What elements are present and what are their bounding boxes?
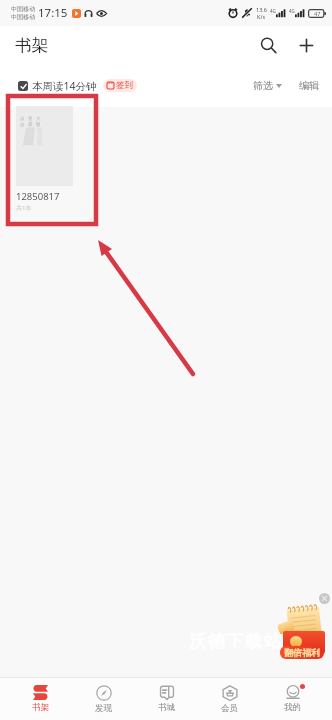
button[interactable]: 书架 — [8, 678, 72, 720]
button[interactable]: 编辑 — [299, 79, 319, 92]
staticText: 沃德下载站 — [188, 631, 282, 652]
staticText: K/s — [257, 13, 266, 20]
button[interactable]: Add book — [291, 30, 321, 60]
staticText: 查 — [28, 116, 33, 122]
staticText: 中国移动 — [11, 5, 35, 13]
button[interactable]: 本周读14分钟 — [18, 79, 97, 93]
staticText: 12850817 — [16, 190, 60, 203]
button[interactable]: 签到 — [103, 79, 137, 92]
staticText: 4G — [270, 8, 276, 14]
button[interactable]: Close promotion — [319, 593, 330, 604]
staticText: 点 — [20, 116, 25, 122]
staticText: 4G — [289, 8, 295, 14]
staticText: 我的 — [284, 702, 301, 713]
staticText: 击 — [20, 122, 25, 128]
staticText: 17:15 — [38, 5, 68, 21]
button[interactable]: 我的 — [261, 678, 324, 720]
staticText: 签到 — [116, 80, 133, 91]
staticText: 13.6 — [256, 6, 267, 13]
button[interactable]: 点 — [16, 106, 76, 212]
staticText: 筛选 — [253, 79, 273, 92]
staticText: 书架 — [32, 702, 49, 713]
staticText: 发现 — [95, 703, 112, 714]
button[interactable]: 书城 — [135, 678, 198, 720]
button[interactable]: Search — [253, 30, 283, 60]
staticText: 中国移动 — [11, 13, 35, 21]
staticText: 翻倍福利 — [284, 647, 320, 658]
staticText: 共1本 — [16, 204, 32, 212]
staticText: 本周读14分钟 — [32, 79, 97, 93]
staticText: 看 — [28, 122, 33, 128]
staticText: 大 — [36, 116, 41, 122]
staticText: 会员 — [221, 703, 238, 714]
staticText: 书城 — [158, 702, 175, 713]
button[interactable]: Double reward promotion — [272, 592, 332, 664]
staticText: 47 — [314, 10, 321, 17]
staticText: 图 — [36, 122, 41, 128]
staticText: 书架 — [15, 35, 48, 56]
button[interactable]: 发现 — [72, 678, 135, 720]
button[interactable]: 会员 — [198, 678, 261, 720]
button[interactable]: 筛选 — [253, 79, 282, 92]
